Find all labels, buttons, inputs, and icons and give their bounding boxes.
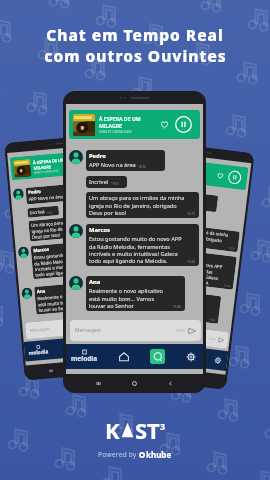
button[interactable]: Incrível <box>27 206 59 218</box>
other: Send <box>188 327 196 335</box>
staticText: Mensagem <box>29 326 50 333</box>
staticText: Um abraço para os irmãos da minha igreja… <box>89 194 185 216</box>
staticText: 13:19 <box>187 212 196 216</box>
button[interactable]: Incrível <box>86 176 127 188</box>
other: Send <box>218 337 225 344</box>
staticText: 13:19 <box>106 229 113 233</box>
button[interactable]: Um abraço para os irmãos da minha igreja… <box>86 192 199 218</box>
staticText: ST <box>135 415 160 445</box>
button[interactable]: Home <box>117 350 131 364</box>
staticText: 15:46 <box>102 303 109 307</box>
button[interactable]: Home <box>63 342 74 354</box>
button[interactable]: Pedro <box>25 183 87 204</box>
button[interactable]: Home <box>161 348 173 360</box>
button[interactable]: Ana <box>143 287 221 324</box>
button[interactable]: Marcos <box>147 246 237 290</box>
staticText: 15:20 <box>187 260 196 264</box>
button[interactable]: Settings <box>113 338 125 350</box>
staticText: 18:10 <box>138 165 147 169</box>
other: Home <box>131 380 138 387</box>
button[interactable]: Um abraço para os irmãos da minha igreja… <box>152 221 240 252</box>
staticText: APP Novo na área <box>28 193 65 203</box>
staticText: Ana <box>89 278 101 286</box>
staticText: MILAGRE <box>33 163 51 170</box>
button[interactable]: Chat <box>88 339 100 352</box>
staticText: Estou gostando muito do novo APP da Rádi… <box>34 248 108 277</box>
button[interactable]: Pause <box>227 170 242 185</box>
staticText: Pedro <box>89 152 106 160</box>
button[interactable]: Incrível <box>155 209 187 222</box>
staticText: À ESPERA DE UM <box>171 162 204 172</box>
button[interactable]: Chat <box>186 350 199 364</box>
button[interactable]: melodia <box>127 344 148 356</box>
button[interactable]: melodia <box>71 350 98 363</box>
staticText: Realmente o novo aplicativo está muito b… <box>89 287 171 309</box>
staticText: 0/500 <box>209 337 216 341</box>
staticText: melodia <box>127 347 148 357</box>
button[interactable]: À ESPERA DE UM <box>69 110 200 139</box>
staticText: 18:10 <box>196 205 203 209</box>
staticText: Realmente o novo aplicativo está muito b… <box>37 290 101 313</box>
button[interactable]: Chat <box>150 349 165 364</box>
staticText: Ana <box>37 288 46 295</box>
staticText: APP Novo na área <box>89 161 136 169</box>
staticText: 15:46 <box>173 305 182 309</box>
button[interactable]: Mensagem <box>128 320 229 349</box>
other: Recents <box>95 380 102 387</box>
staticText: À ESPERA DE UM <box>33 157 65 165</box>
staticText: Incrível <box>30 208 45 216</box>
button[interactable]: Ana <box>34 280 112 315</box>
other: Favorite <box>79 159 87 166</box>
staticText: 19:01 <box>47 211 54 214</box>
other: Home <box>75 365 81 371</box>
other: Favorite <box>160 120 169 129</box>
button[interactable]: Pedro <box>86 150 165 171</box>
staticText: 15:20 <box>224 284 231 288</box>
button[interactable]: Pause <box>90 154 104 169</box>
staticText: 15:46 <box>209 318 216 322</box>
staticText: À ESPERA DE UM <box>99 115 141 122</box>
button[interactable]: Settings <box>184 350 198 364</box>
button[interactable]: Ana <box>86 276 185 311</box>
staticText: Marcos <box>33 246 49 254</box>
staticText: Ana <box>148 289 158 296</box>
button[interactable]: Settings <box>212 354 224 367</box>
button[interactable]: Marcos <box>31 239 119 279</box>
button[interactable]: Mensagem <box>25 314 126 339</box>
staticText: khube <box>146 449 172 460</box>
staticText: MILAGRE <box>99 122 122 129</box>
staticText: 0/500 <box>176 329 185 333</box>
staticText: Mensagem <box>75 327 102 334</box>
staticText: Um abraço para os irmãos da minha igreja… <box>155 223 229 249</box>
staticText: com outros Ouvintes <box>44 45 227 66</box>
staticText: SHIRLEY CARVALHAES <box>99 130 132 134</box>
other: Home <box>170 373 176 379</box>
staticText: melodia <box>71 354 98 363</box>
button[interactable]: Mensagem <box>70 320 201 341</box>
staticText: Um abraço para os irmãos da minha igreja… <box>31 216 105 240</box>
button[interactable]: melodia <box>28 344 49 356</box>
other: Back <box>167 380 174 387</box>
staticText: Pedro <box>160 190 174 198</box>
staticText: Pedro <box>28 188 41 196</box>
button[interactable]: Pause <box>175 116 192 133</box>
button[interactable]: Um abraço para os irmãos da minha igreja… <box>28 213 116 241</box>
staticText: Estou gostando muito do novo APP da Rádi… <box>89 235 185 264</box>
staticText: Incrível <box>89 178 109 186</box>
staticText: Marcos <box>89 226 110 234</box>
button[interactable]: À ESPERA DE UM <box>147 155 248 190</box>
button[interactable]: Pedro <box>157 188 218 212</box>
button[interactable]: Marcos <box>86 224 199 266</box>
staticText: Incrível <box>157 211 173 219</box>
staticText: Powered by <box>98 450 139 460</box>
staticText: Estou gostando muito do novo APP da Rádi… <box>150 255 225 287</box>
button[interactable]: À ESPERA DE UM <box>10 149 111 180</box>
staticText: K <box>105 415 120 445</box>
staticText: Chat em Tempo Real <box>46 24 224 45</box>
